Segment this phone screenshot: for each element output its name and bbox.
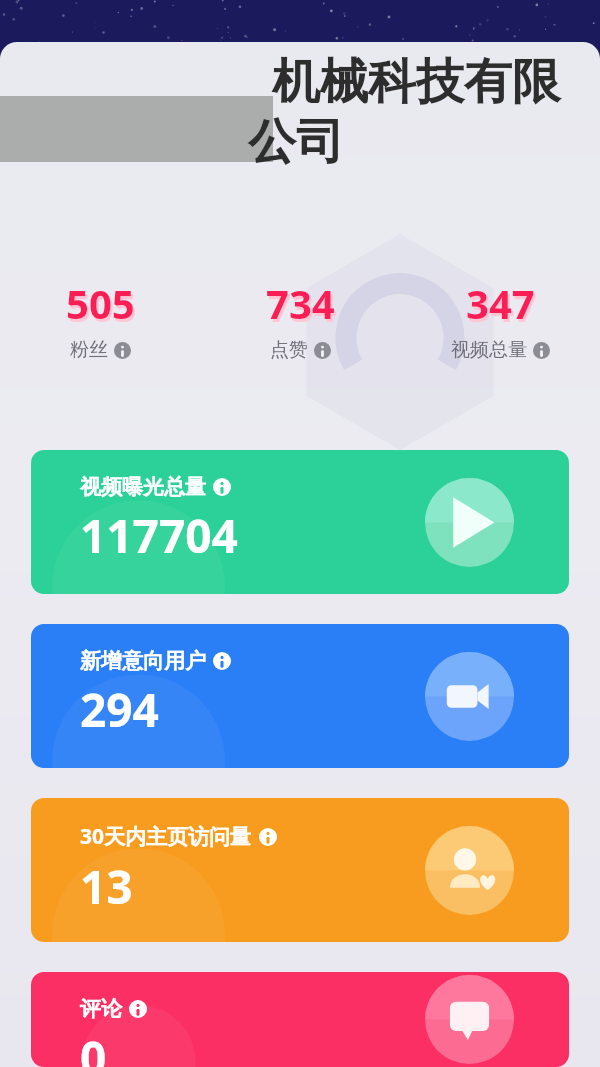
button[interactable]: 347: [400, 276, 600, 362]
other: Visitors: [425, 826, 514, 915]
button[interactable]: 734: [200, 276, 400, 362]
staticText: 公司: [248, 112, 344, 172]
staticText: 347: [468, 279, 537, 333]
staticText: 13: [80, 855, 133, 918]
staticText: 视频总量: [451, 338, 527, 362]
staticText: 机械科技有限: [272, 52, 560, 112]
button[interactable]: 新增意向用户: [31, 624, 569, 768]
staticText: 734: [266, 276, 335, 330]
staticText: 117704: [80, 504, 238, 567]
staticText: 评论: [80, 996, 122, 1022]
other: Video: [425, 652, 514, 741]
staticText: 294: [80, 678, 159, 741]
button[interactable]: 评论: [31, 972, 569, 1067]
staticText: 505: [66, 276, 135, 330]
staticText: 粉丝: [70, 338, 108, 362]
staticText: 30天内主页访问量: [80, 822, 252, 851]
staticText: 505: [68, 279, 137, 333]
staticText: 点赞: [270, 338, 308, 362]
button[interactable]: 30天内主页访问量: [31, 798, 569, 942]
other: Play: [425, 478, 514, 567]
staticText: 0: [80, 1026, 107, 1067]
staticText: 734: [268, 279, 337, 333]
staticText: 新增意向用户: [80, 648, 206, 674]
staticText: 347: [466, 276, 535, 330]
other: Comments: [425, 975, 514, 1064]
button[interactable]: 视频曝光总量: [31, 450, 569, 594]
staticText: 视频曝光总量: [80, 474, 206, 500]
button[interactable]: 505: [0, 276, 200, 362]
